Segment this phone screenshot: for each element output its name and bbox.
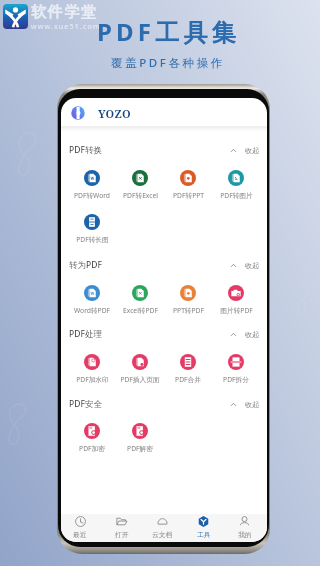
staticText: 收起 [245,330,259,339]
staticText: PDF处理 [69,328,102,340]
button[interactable]: PDF拆分 [212,352,260,384]
staticText: 覆盖PDF各种操作 [111,55,225,71]
button[interactable]: PDF加水印 [68,352,116,384]
staticText: PDF合并 [175,375,201,384]
button[interactable]: PDF合并 [164,352,212,384]
staticText: PDF安全 [69,398,102,410]
button[interactable]: 我的 [224,514,265,542]
staticText: 我的 [238,530,252,539]
staticText: 打开 [115,530,129,539]
button[interactable]: PDF转图片 [212,168,260,200]
staticText: Word转PDF [74,306,110,315]
staticText: 最近 [73,530,87,539]
button[interactable]: 工具 [183,514,224,542]
button[interactable]: 图片转PDF [212,283,260,315]
staticText: 收起 [245,261,259,270]
staticText: 图片转PDF [220,306,253,315]
staticText: YOZO [98,106,131,121]
staticText: PPT转PDF [173,306,204,315]
button[interactable]: PDF转Excel [116,168,164,200]
button[interactable]: PDF插入页面 [116,352,164,384]
button[interactable]: PDF转长图 [68,212,116,244]
button[interactable]: 收起 [229,397,261,412]
staticText: PDF转换 [69,144,102,156]
button[interactable]: Excel转PDF [116,283,164,315]
button[interactable]: 云文档 [142,514,183,542]
staticText: PDF插入页面 [120,375,160,384]
staticText: PDF解密 [127,444,153,453]
staticText: PDF转图片 [220,191,253,200]
staticText: PDF转Word [74,191,110,200]
staticText: PDF拆分 [223,375,249,384]
staticText: PDF转PPT [173,191,204,200]
button[interactable]: Word转PDF [68,283,116,315]
staticText: 软件学堂 [31,3,98,22]
staticText: 收起 [245,400,259,409]
button[interactable]: PDF加密 [68,421,116,453]
button[interactable]: PDF转Word [68,168,116,200]
staticText: 转为PDF [69,259,102,271]
button[interactable]: PPT转PDF [164,283,212,315]
staticText: PDF转Excel [123,191,158,200]
button[interactable]: 收起 [229,143,261,158]
button[interactable]: 收起 [229,258,261,273]
staticText: PDF加水印 [76,375,109,384]
staticText: www.xue51.com [31,22,101,29]
staticText: 工具 [197,530,211,539]
staticText: PDF工具集 [97,15,240,48]
staticText: PDF转长图 [76,235,109,244]
button[interactable]: PDF转PPT [164,168,212,200]
button[interactable]: 打开 [101,514,142,542]
staticText: 云文档 [152,530,173,539]
staticText: Excel转PDF [123,306,158,315]
button[interactable]: 最近 [61,514,101,542]
staticText: PDF加密 [79,444,105,453]
button[interactable]: PDF解密 [116,421,164,453]
button[interactable]: 收起 [229,327,261,342]
staticText: 收起 [245,146,259,155]
